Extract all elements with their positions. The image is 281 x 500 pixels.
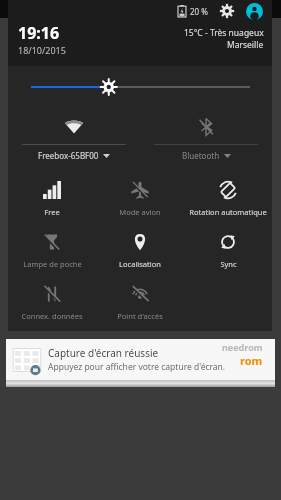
staticText: Capture d'écran réussie bbox=[48, 346, 159, 360]
button[interactable]: Free bbox=[8, 179, 96, 217]
button[interactable]: Freebox-65BF00 bbox=[8, 114, 140, 161]
button[interactable]: Mode avion bbox=[96, 179, 184, 217]
button[interactable]: Rotation automatique bbox=[184, 179, 272, 217]
staticText: 18/10/2015 bbox=[18, 44, 66, 56]
button[interactable]: Localisation bbox=[96, 231, 184, 269]
staticText: Freebox-65BF00 bbox=[38, 150, 99, 161]
button[interactable]: Settings bbox=[218, 2, 236, 20]
button[interactable]: Brightness bbox=[8, 76, 272, 98]
button[interactable]: Sync bbox=[184, 231, 272, 269]
staticText: Connex. données bbox=[21, 311, 83, 321]
staticText: Bluetooth bbox=[182, 150, 220, 161]
button[interactable]: Capture d'écran réussie bbox=[6, 339, 275, 380]
staticText: 20 % bbox=[190, 6, 208, 17]
staticText: Rotation automatique bbox=[189, 207, 267, 217]
staticText: Marseille bbox=[227, 39, 264, 51]
button[interactable]: Lampe de poche bbox=[8, 231, 96, 269]
staticText: Appuyez pour afficher votre capture d'éc… bbox=[48, 361, 226, 373]
staticText: 19:16 bbox=[18, 22, 60, 44]
button[interactable]: User bbox=[244, 1, 264, 21]
staticText: needrom bbox=[222, 341, 263, 353]
staticText: 15°C - Très nuageux bbox=[184, 27, 264, 39]
staticText: rom bbox=[240, 353, 263, 368]
staticText: Mode avion bbox=[119, 207, 161, 217]
button[interactable]: Point d'accès bbox=[96, 283, 184, 321]
button[interactable]: Bluetooth bbox=[140, 114, 272, 161]
staticText: Lampe de poche bbox=[23, 259, 82, 269]
staticText: Sync bbox=[220, 259, 237, 269]
button[interactable]: Connex. données bbox=[8, 283, 96, 321]
staticText: Free bbox=[44, 207, 60, 217]
staticText: Localisation bbox=[119, 259, 161, 269]
staticText: Point d'accès bbox=[117, 311, 163, 321]
